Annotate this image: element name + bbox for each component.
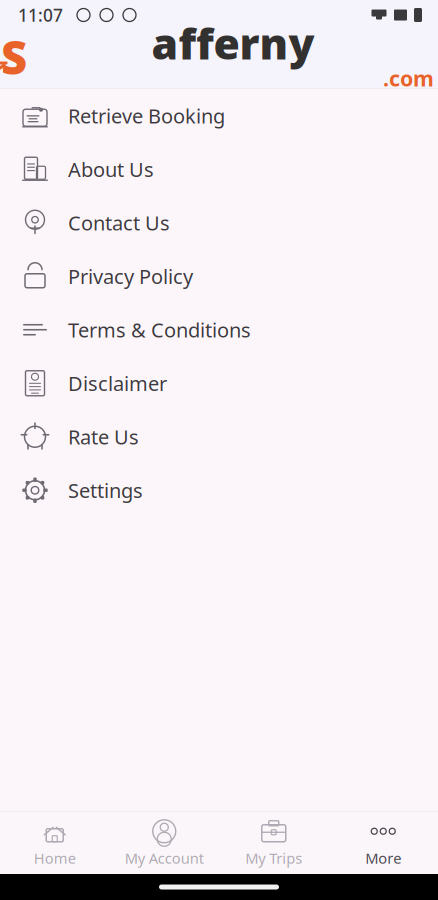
- staticText: Contact Us: [68, 209, 170, 236]
- staticText: More: [365, 848, 401, 868]
- staticText: Terms & Conditions: [68, 316, 251, 343]
- staticText: My Trips: [245, 848, 302, 868]
- staticText: Privacy Policy: [68, 263, 193, 290]
- button[interactable]: More: [328, 812, 438, 874]
- button[interactable]: Terms & Conditions: [0, 303, 438, 356]
- button[interactable]: Home: [0, 812, 109, 874]
- button[interactable]: Rate Us: [0, 410, 438, 463]
- staticText: About Us: [68, 156, 154, 183]
- button[interactable]: Privacy Policy: [0, 249, 438, 303]
- staticText: .com: [383, 64, 434, 92]
- staticText: 11:07: [18, 3, 63, 26]
- button[interactable]: Settings: [0, 463, 438, 517]
- staticText: afferny: [151, 14, 314, 71]
- button[interactable]: About Us: [0, 142, 438, 196]
- staticText: My Account: [125, 848, 204, 868]
- button[interactable]: My Trips: [219, 812, 328, 874]
- staticText: Home: [34, 848, 76, 868]
- staticText: Rate Us: [68, 423, 139, 450]
- button[interactable]: Contact Us: [0, 196, 438, 249]
- button[interactable]: Disclaimer: [0, 356, 438, 410]
- staticText: S: [1, 27, 27, 87]
- button[interactable]: Retrieve Booking: [0, 89, 438, 142]
- staticText: Disclaimer: [68, 370, 167, 397]
- button[interactable]: My Account: [109, 812, 219, 874]
- staticText: Retrieve Booking: [68, 102, 225, 129]
- staticText: Settings: [68, 477, 143, 504]
